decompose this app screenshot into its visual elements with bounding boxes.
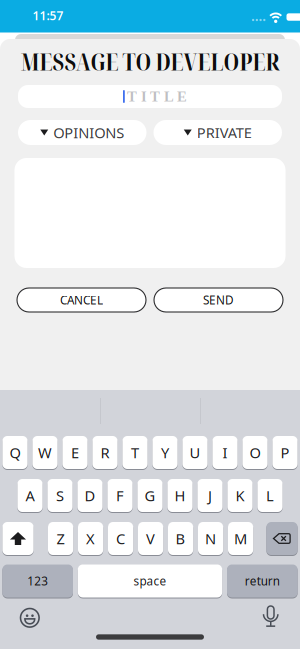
staticText: E bbox=[71, 442, 79, 462]
staticText: OPINIONS bbox=[53, 122, 124, 142]
button[interactable]: T bbox=[122, 436, 148, 469]
button[interactable]: F bbox=[107, 479, 133, 512]
staticText: O bbox=[249, 442, 260, 462]
staticText: M bbox=[234, 528, 247, 548]
button[interactable] bbox=[266, 522, 298, 555]
button[interactable]: space bbox=[78, 564, 222, 597]
button[interactable]: Z bbox=[48, 522, 73, 555]
button[interactable]: O bbox=[242, 436, 268, 469]
staticText: Y bbox=[161, 442, 169, 462]
staticText: C bbox=[116, 528, 125, 548]
button[interactable]: G bbox=[137, 479, 163, 512]
button[interactable]: P bbox=[272, 436, 298, 469]
staticText: W bbox=[38, 442, 52, 462]
staticText: J bbox=[208, 485, 212, 505]
button[interactable]: M bbox=[228, 522, 253, 555]
button[interactable]: Y bbox=[152, 436, 178, 469]
staticText: T I T L E bbox=[127, 88, 187, 105]
staticText: PRIVATE bbox=[197, 122, 252, 142]
staticText: R bbox=[100, 442, 109, 462]
button[interactable]: J bbox=[197, 479, 223, 512]
staticText: S bbox=[56, 485, 64, 505]
button[interactable]: A bbox=[17, 479, 43, 512]
button[interactable]: S bbox=[47, 479, 73, 512]
button[interactable] bbox=[20, 608, 39, 627]
button[interactable]: X bbox=[78, 522, 103, 555]
staticText: I bbox=[222, 442, 227, 462]
staticText: SEND bbox=[203, 292, 234, 308]
button[interactable]: return bbox=[227, 564, 298, 597]
button[interactable] bbox=[2, 522, 34, 555]
staticText: N bbox=[205, 528, 216, 548]
button[interactable]: L bbox=[257, 479, 283, 512]
staticText: Q bbox=[9, 442, 20, 462]
button[interactable] bbox=[262, 606, 279, 627]
staticText: 123 bbox=[27, 573, 48, 589]
button[interactable]: CANCEL bbox=[17, 288, 146, 312]
button[interactable]: R bbox=[92, 436, 118, 469]
staticText: D bbox=[84, 485, 95, 505]
staticText: P bbox=[280, 442, 289, 462]
staticText: X bbox=[86, 528, 95, 548]
button[interactable] bbox=[18, 85, 282, 108]
staticText: Z bbox=[57, 528, 65, 548]
button[interactable]: B bbox=[168, 522, 193, 555]
staticText: H bbox=[174, 485, 185, 505]
button[interactable]: I bbox=[212, 436, 238, 469]
button[interactable]: E bbox=[62, 436, 88, 469]
button[interactable]: SEND bbox=[154, 288, 283, 312]
button[interactable]: OPINIONS bbox=[18, 120, 146, 145]
staticText: MESSAGE TO DEVELOPER bbox=[20, 44, 279, 78]
staticText: B bbox=[176, 528, 186, 548]
staticText: space bbox=[133, 573, 166, 589]
staticText: G bbox=[144, 485, 155, 505]
staticText: U bbox=[189, 442, 200, 462]
button[interactable]: C bbox=[108, 522, 133, 555]
staticText: return bbox=[245, 573, 280, 589]
button[interactable]: K bbox=[227, 479, 253, 512]
button[interactable]: PRIVATE bbox=[153, 120, 282, 145]
button[interactable]: N bbox=[198, 522, 223, 555]
button[interactable]: Q bbox=[2, 436, 28, 469]
staticText: 11:57 bbox=[32, 7, 63, 24]
staticText: CANCEL bbox=[60, 292, 103, 308]
staticText: V bbox=[146, 528, 155, 548]
button[interactable]: D bbox=[77, 479, 103, 512]
button[interactable]: W bbox=[32, 436, 58, 469]
staticText: K bbox=[235, 485, 244, 505]
button[interactable]: H bbox=[167, 479, 193, 512]
staticText: L bbox=[266, 485, 274, 505]
button[interactable]: U bbox=[182, 436, 208, 469]
staticText: F bbox=[116, 485, 124, 505]
staticText: T bbox=[131, 442, 139, 462]
staticText: A bbox=[25, 485, 34, 505]
button[interactable]: V bbox=[138, 522, 163, 555]
button[interactable]: 123 bbox=[2, 564, 73, 597]
